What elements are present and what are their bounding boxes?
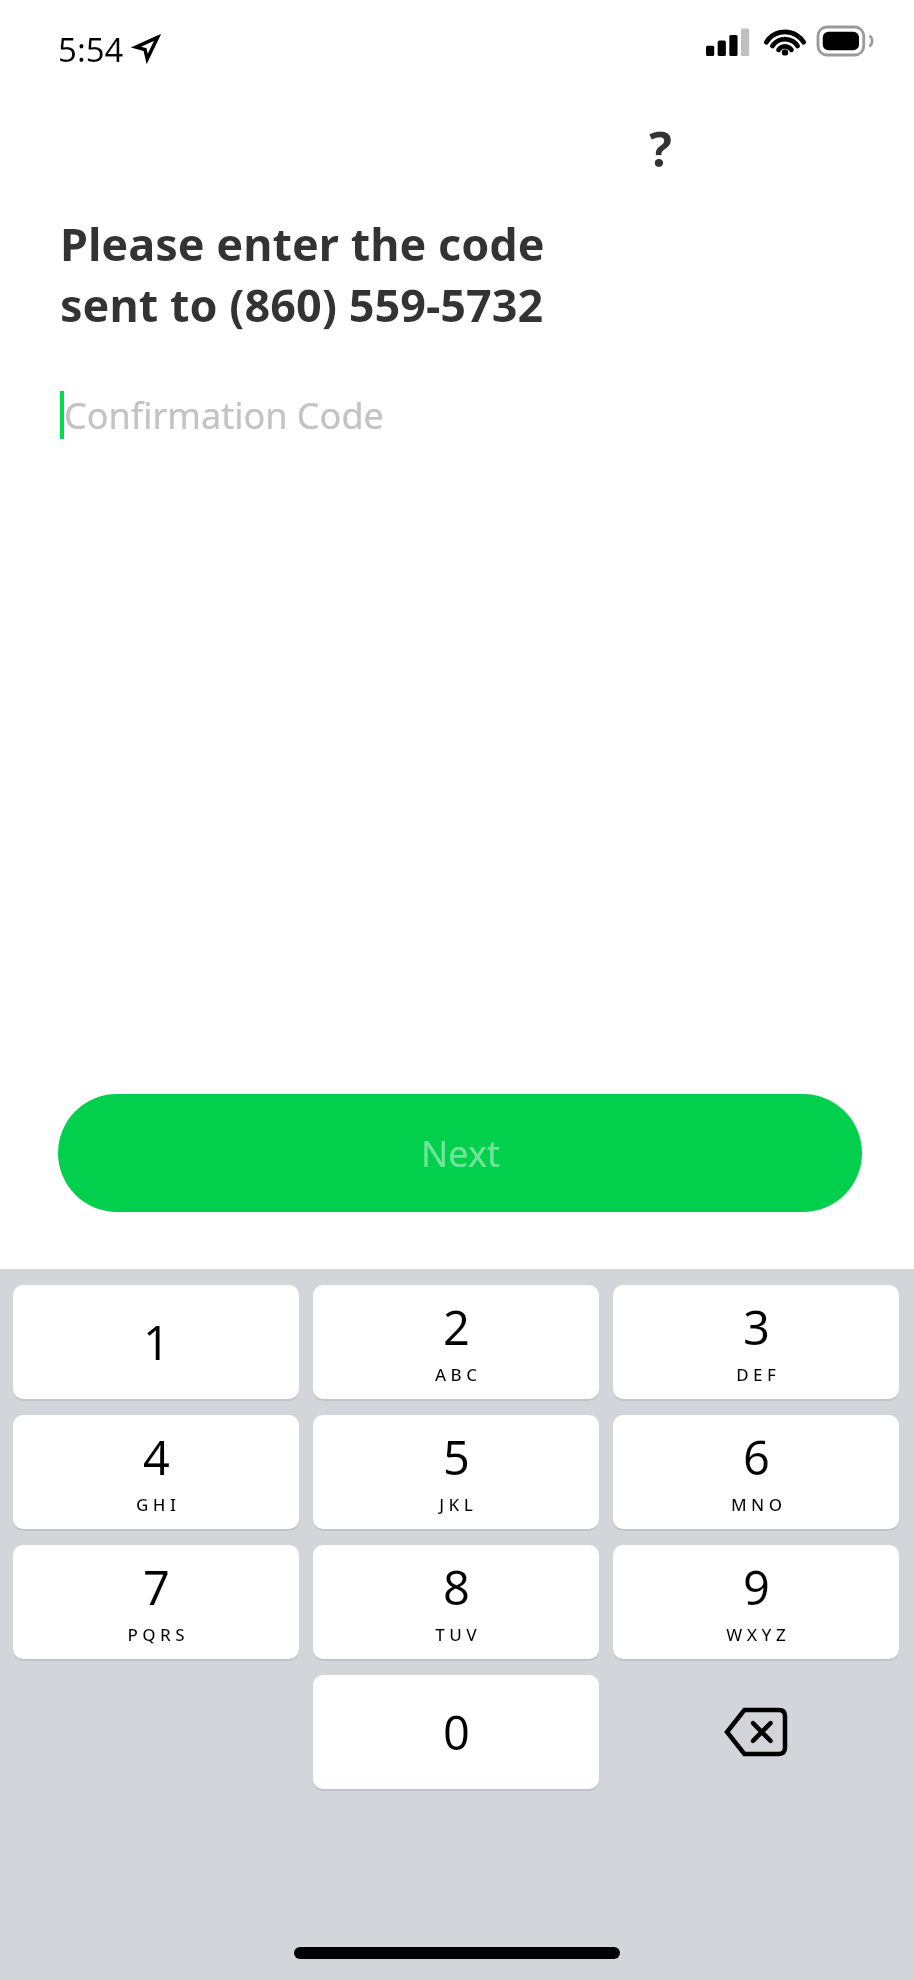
staticText: 4 (143, 1425, 170, 1489)
staticText: M N O (731, 1493, 782, 1516)
button[interactable]: 0 (313, 1675, 599, 1789)
staticText: 5 (443, 1425, 470, 1489)
staticText: 2 (443, 1295, 470, 1359)
button[interactable]: 7 (13, 1545, 299, 1659)
staticText: 3 (743, 1295, 770, 1359)
staticText: T U V (435, 1623, 477, 1646)
button[interactable]: 6 (613, 1415, 899, 1529)
staticText: J K L (439, 1493, 473, 1516)
staticText: 5:54 (58, 27, 124, 72)
button[interactable]: 3 (613, 1285, 899, 1399)
staticText: W X Y Z (726, 1623, 786, 1646)
button[interactable]: Help (616, 104, 704, 192)
staticText: 8 (443, 1555, 470, 1619)
staticText: D E F (736, 1363, 776, 1386)
staticText: 1 (143, 1310, 170, 1374)
button[interactable]: Confirmation Code (60, 380, 720, 450)
button[interactable]: 5 (313, 1415, 599, 1529)
staticText: A B C (435, 1363, 477, 1386)
button[interactable]: 8 (313, 1545, 599, 1659)
staticText: 9 (743, 1555, 770, 1619)
button[interactable]: 2 (313, 1285, 599, 1399)
staticText: ? (649, 116, 672, 181)
staticText: G H I (136, 1493, 176, 1516)
staticText: 0 (443, 1700, 470, 1764)
staticText: 7 (143, 1555, 170, 1619)
staticText: Next (421, 1129, 500, 1178)
button[interactable]: 4 (13, 1415, 299, 1529)
button[interactable]: 9 (613, 1545, 899, 1659)
button[interactable]: 1 (13, 1285, 299, 1399)
staticText: P Q R S (127, 1623, 185, 1646)
staticText: Confirmation Code (64, 391, 384, 440)
button[interactable]: Next (58, 1094, 862, 1212)
staticText: sent to (860) 559-5732 (60, 274, 544, 335)
button[interactable]: Backspace (613, 1675, 899, 1789)
staticText: Please enter the code (60, 213, 545, 274)
staticText: 6 (743, 1425, 770, 1489)
